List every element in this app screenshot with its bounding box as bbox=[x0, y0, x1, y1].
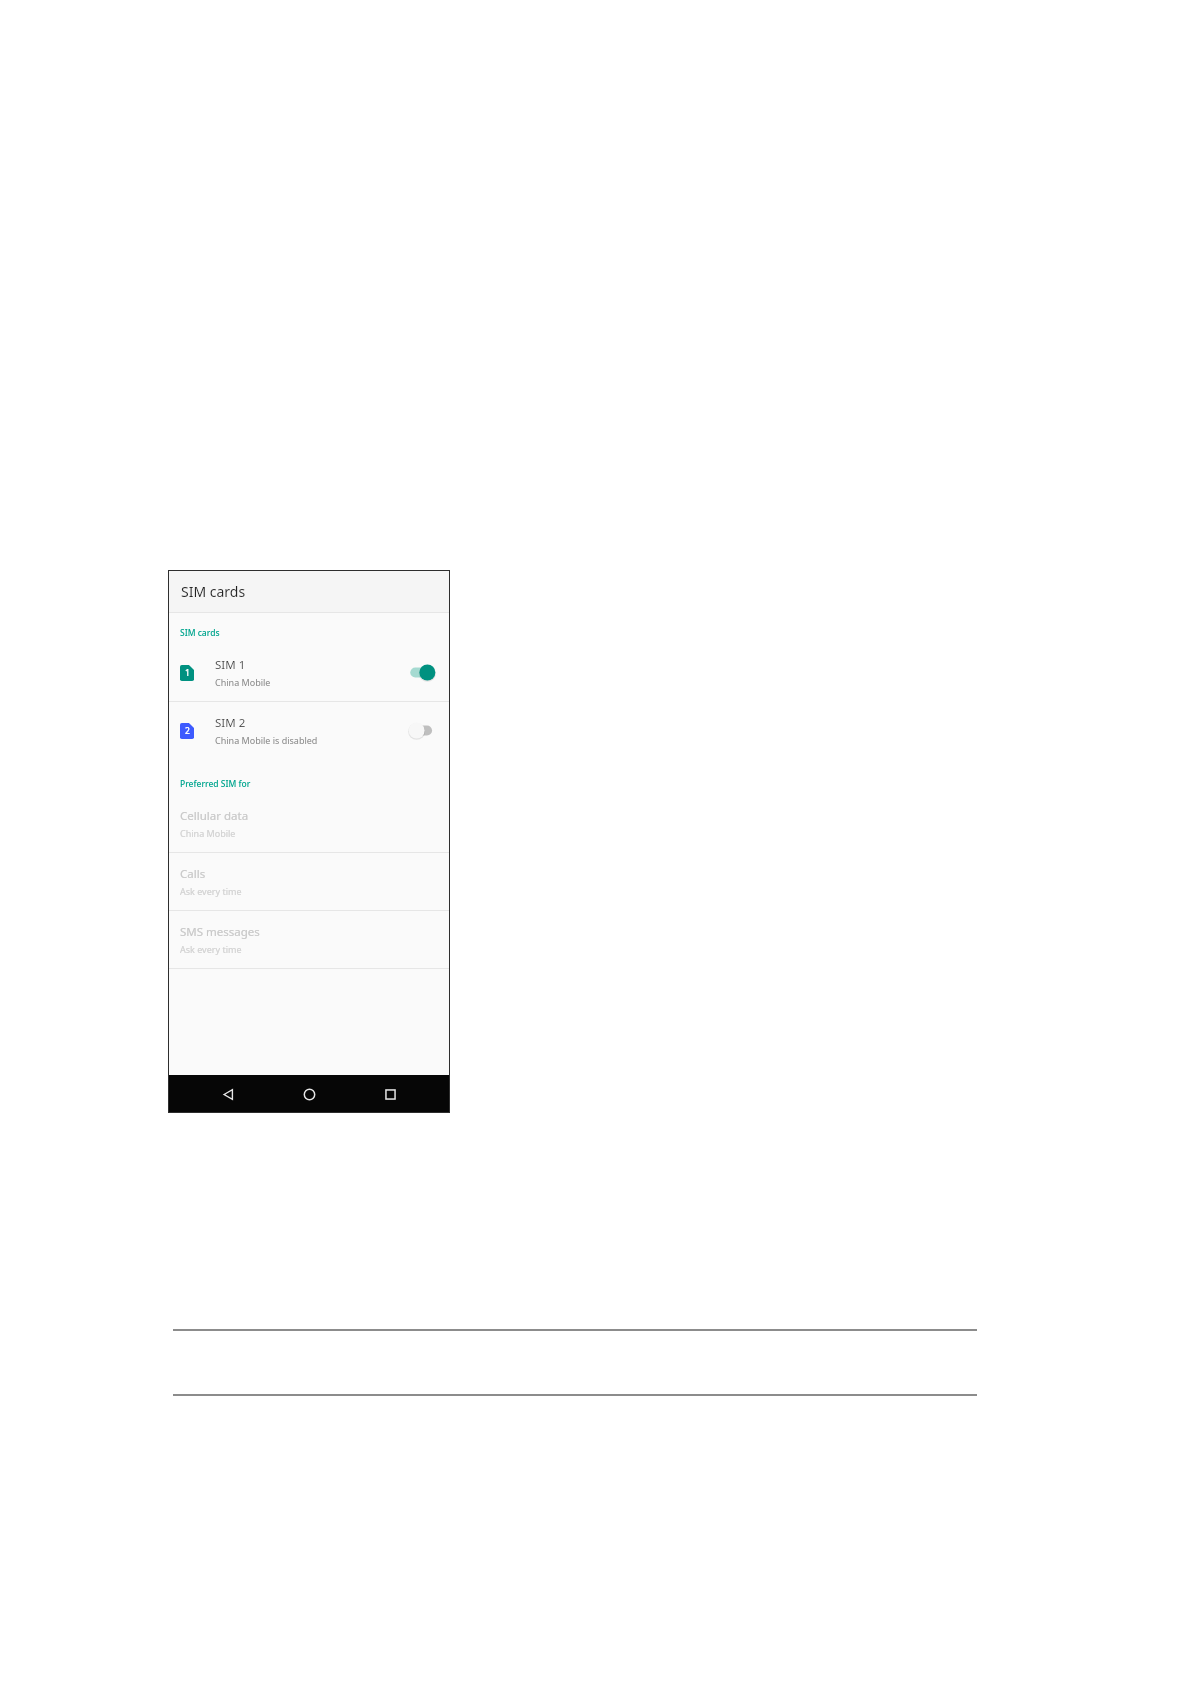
staticText: SIM 1 bbox=[215, 657, 246, 673]
staticText: Cellular data bbox=[180, 808, 249, 824]
staticText: China Mobile is disabled bbox=[215, 734, 318, 746]
staticText: SMS messages bbox=[180, 924, 260, 940]
staticText: SIM cards bbox=[181, 582, 246, 601]
button[interactable]: 2 bbox=[168, 702, 450, 759]
button[interactable]: Back bbox=[207, 1075, 249, 1113]
button[interactable]: Cellular data bbox=[168, 795, 450, 852]
staticText: Calls bbox=[180, 866, 206, 882]
staticText: Preferred SIM for bbox=[180, 778, 251, 790]
staticText: Ask every time bbox=[180, 885, 242, 897]
staticText: China Mobile bbox=[215, 676, 271, 688]
button[interactable]: Turn off SIM bbox=[408, 664, 436, 681]
staticText: 1 bbox=[185, 667, 190, 679]
staticText: China Mobile bbox=[180, 827, 236, 839]
button[interactable]: 1 bbox=[168, 644, 450, 701]
button[interactable]: Calls bbox=[168, 853, 450, 910]
staticText: 2 bbox=[185, 725, 190, 737]
staticText: SIM cards bbox=[180, 627, 220, 639]
staticText: Ask every time bbox=[180, 943, 242, 955]
button[interactable]: SMS messages bbox=[168, 911, 450, 968]
button[interactable]: Turn on SIM bbox=[408, 722, 436, 739]
button[interactable]: Recent apps bbox=[369, 1075, 411, 1113]
staticText: SIM 2 bbox=[215, 715, 246, 731]
button[interactable]: Home bbox=[288, 1075, 330, 1113]
